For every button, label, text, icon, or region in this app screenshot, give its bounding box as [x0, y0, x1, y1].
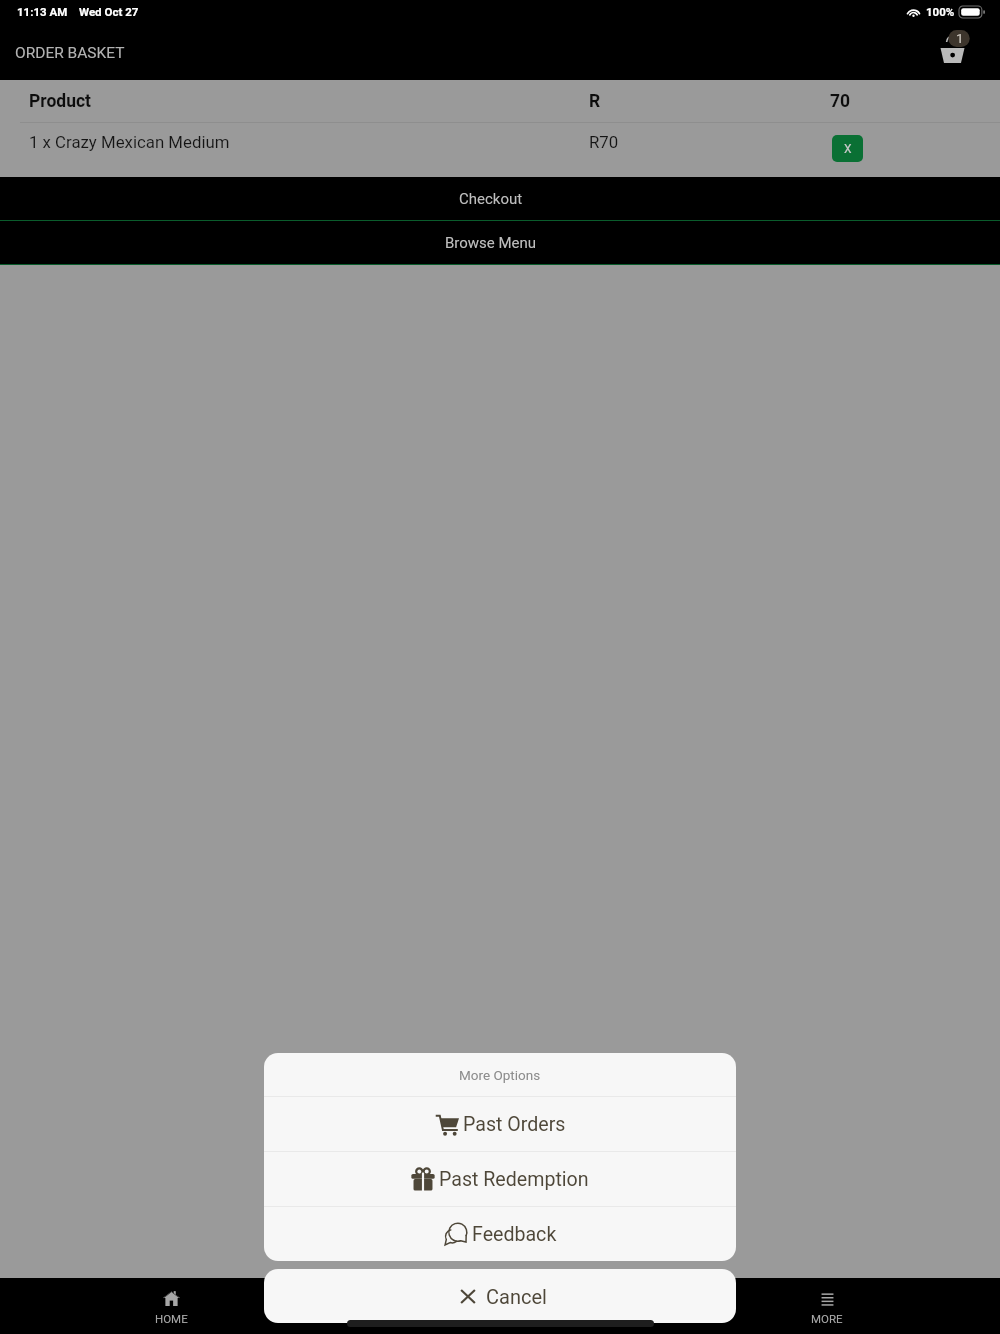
staticText: 11:13 AM [17, 5, 68, 18]
staticText: Product [29, 91, 91, 112]
button[interactable]: Product [0, 80, 1000, 123]
button[interactable]: Remove item [832, 135, 863, 162]
button[interactable]: Checkout [0, 177, 1000, 220]
staticText: Checkout [459, 190, 523, 208]
button[interactable]: Basket [926, 27, 978, 77]
button[interactable]: MORE [767, 1278, 887, 1334]
button[interactable]: Browse Menu [0, 221, 1000, 264]
staticText: Cancel [486, 1285, 547, 1308]
staticText: MORE [811, 1312, 843, 1325]
staticText: Wed Oct 27 [79, 5, 139, 18]
button[interactable]: HOME [111, 1278, 231, 1334]
staticText: Past Orders [463, 1113, 566, 1136]
staticText: 100% [926, 5, 955, 18]
staticText: ORDER BASKET [15, 44, 125, 62]
button[interactable]: Past Orders [264, 1097, 736, 1151]
staticText: More Options [459, 1067, 541, 1083]
staticText: Browse Menu [445, 234, 537, 252]
staticText: Past Redemption [439, 1168, 589, 1191]
staticText: R70 [589, 132, 619, 152]
button[interactable]: Cancel [264, 1269, 736, 1323]
staticText: HOME [155, 1312, 188, 1325]
button[interactable]: Past Redemption [264, 1152, 736, 1206]
staticText: R [589, 91, 601, 112]
button[interactable]: Feedback [264, 1207, 736, 1261]
staticText: 1 [956, 30, 964, 46]
staticText: 1 x Crazy Mexican Medium [29, 132, 230, 152]
staticText: X [844, 142, 852, 156]
staticText: 70 [830, 91, 851, 112]
button[interactable]: 1 x Crazy Mexican Medium [0, 123, 1000, 177]
staticText: Feedback [472, 1223, 557, 1246]
